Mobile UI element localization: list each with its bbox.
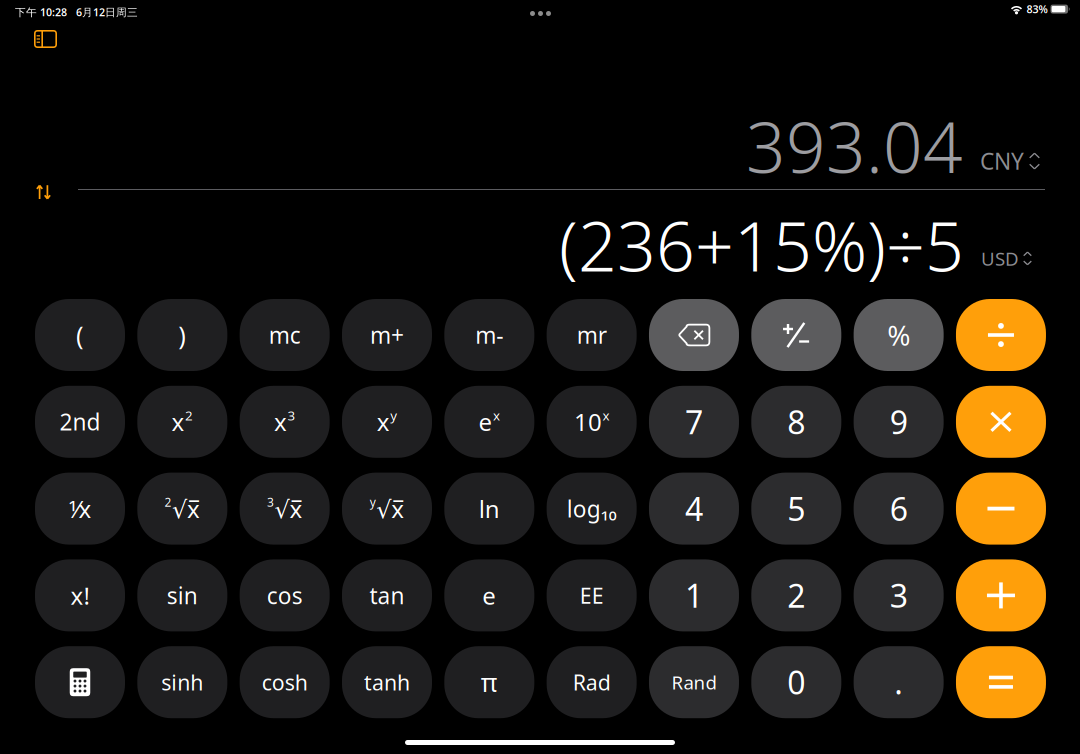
button[interactable]: Rad: [547, 646, 637, 718]
button[interactable]: tan: [342, 559, 432, 631]
button[interactable]: x cubed: [240, 386, 330, 458]
button[interactable]: square root of x: [137, 473, 227, 545]
staticText: 0: [787, 661, 805, 703]
button[interactable]: Delete: [649, 299, 739, 371]
button[interactable]: 2nd: [35, 386, 125, 458]
button[interactable]: Percent: [854, 299, 944, 371]
button[interactable]: Multiply: [956, 386, 1046, 458]
staticText: m-: [475, 320, 503, 350]
button[interactable]: 1 over x: [35, 473, 125, 545]
button[interactable]: Multitasking Controls: [521, 2, 560, 25]
staticText: ln: [479, 493, 500, 525]
staticText: y: [390, 406, 397, 424]
button[interactable]: 4: [649, 473, 739, 545]
staticText: 6: [890, 487, 908, 530]
staticText: Rad: [573, 668, 611, 696]
staticText: √x̅: [376, 493, 404, 525]
button[interactable]: 6: [854, 473, 944, 545]
button[interactable]: x squared: [137, 386, 227, 458]
button[interactable]: Plus Minus: [751, 299, 841, 371]
button[interactable]: 3: [854, 559, 944, 631]
button[interactable]: sin: [137, 559, 227, 631]
staticText: mc: [269, 320, 301, 350]
button[interactable]: Divide: [956, 299, 1046, 371]
staticText: 2: [185, 406, 193, 424]
button[interactable]: e: [444, 559, 534, 631]
staticText: x: [602, 406, 609, 424]
staticText: (: [76, 318, 84, 352]
button[interactable]: m+: [342, 299, 432, 371]
button[interactable]: 0: [751, 646, 841, 718]
staticText: 3: [287, 406, 295, 424]
button[interactable]: ln: [444, 473, 534, 545]
staticText: ): [178, 318, 186, 352]
staticText: 8: [787, 401, 805, 443]
button[interactable]: 2: [751, 559, 841, 631]
button[interactable]: cos: [240, 559, 330, 631]
staticText: mr: [577, 320, 607, 350]
staticText: 393.04: [746, 100, 963, 192]
button[interactable]: USD: [972, 237, 1041, 280]
button[interactable]: x factorial: [35, 559, 125, 631]
staticText: x: [377, 406, 390, 438]
staticText: 2: [787, 574, 805, 617]
button[interactable]: y-th root of x: [342, 473, 432, 545]
staticText: x: [493, 406, 500, 424]
button[interactable]: cube root of x: [240, 473, 330, 545]
button[interactable]: mc: [240, 299, 330, 371]
button[interactable]: 9: [854, 386, 944, 458]
button[interactable]: tanh: [342, 646, 432, 718]
button[interactable]: Rand: [649, 646, 739, 718]
button[interactable]: Decimal Point: [854, 646, 944, 718]
staticText: 2: [165, 494, 172, 510]
button[interactable]: pi: [444, 646, 534, 718]
button[interactable]: Show Sidebar: [25, 21, 66, 57]
staticText: x: [172, 406, 185, 438]
staticText: x: [274, 406, 287, 438]
staticText: e: [482, 579, 496, 611]
staticText: ⅟x: [68, 493, 91, 525]
staticText: 4: [685, 487, 703, 530]
button[interactable]: 5: [751, 473, 841, 545]
staticText: (236+15%)÷5: [559, 200, 964, 290]
staticText: sin: [167, 580, 198, 610]
staticText: 10: [574, 406, 602, 438]
staticText: 83%: [1026, 2, 1047, 16]
staticText: π: [481, 665, 498, 699]
staticText: m+: [370, 320, 404, 350]
staticText: x!: [70, 579, 89, 611]
button[interactable]: CNY: [971, 137, 1049, 185]
button[interactable]: log base 10: [547, 473, 637, 545]
staticText: .: [894, 661, 903, 703]
button[interactable]: cosh: [240, 646, 330, 718]
staticText: USD: [981, 246, 1019, 271]
button[interactable]: Minus: [956, 473, 1046, 545]
staticText: 3: [267, 494, 274, 510]
button[interactable]: Close Parenthesis: [137, 299, 227, 371]
button[interactable]: Plus: [956, 559, 1046, 631]
button[interactable]: sinh: [137, 646, 227, 718]
staticText: %: [887, 316, 910, 354]
button[interactable]: 7: [649, 386, 739, 458]
button[interactable]: 10 to the power of x: [547, 386, 637, 458]
staticText: cos: [267, 580, 303, 610]
staticText: tanh: [364, 668, 410, 696]
staticText: 5: [787, 487, 805, 530]
button[interactable]: Calculator: [35, 646, 125, 718]
staticText: √x̅: [274, 493, 302, 525]
button[interactable]: x to the power of y: [342, 386, 432, 458]
button[interactable]: Open Parenthesis: [35, 299, 125, 371]
staticText: sinh: [161, 668, 203, 696]
button[interactable]: 1: [649, 559, 739, 631]
staticText: 2nd: [59, 407, 100, 437]
staticText: y: [370, 494, 376, 510]
button[interactable]: m-: [444, 299, 534, 371]
button[interactable]: Equals: [956, 646, 1046, 718]
staticText: Rand: [671, 670, 716, 695]
staticText: CNY: [980, 146, 1024, 176]
button[interactable]: e to the power of x: [444, 386, 534, 458]
button[interactable]: Swap Currencies: [28, 176, 59, 209]
button[interactable]: EE: [547, 559, 637, 631]
button[interactable]: mr: [547, 299, 637, 371]
button[interactable]: 8: [751, 386, 841, 458]
